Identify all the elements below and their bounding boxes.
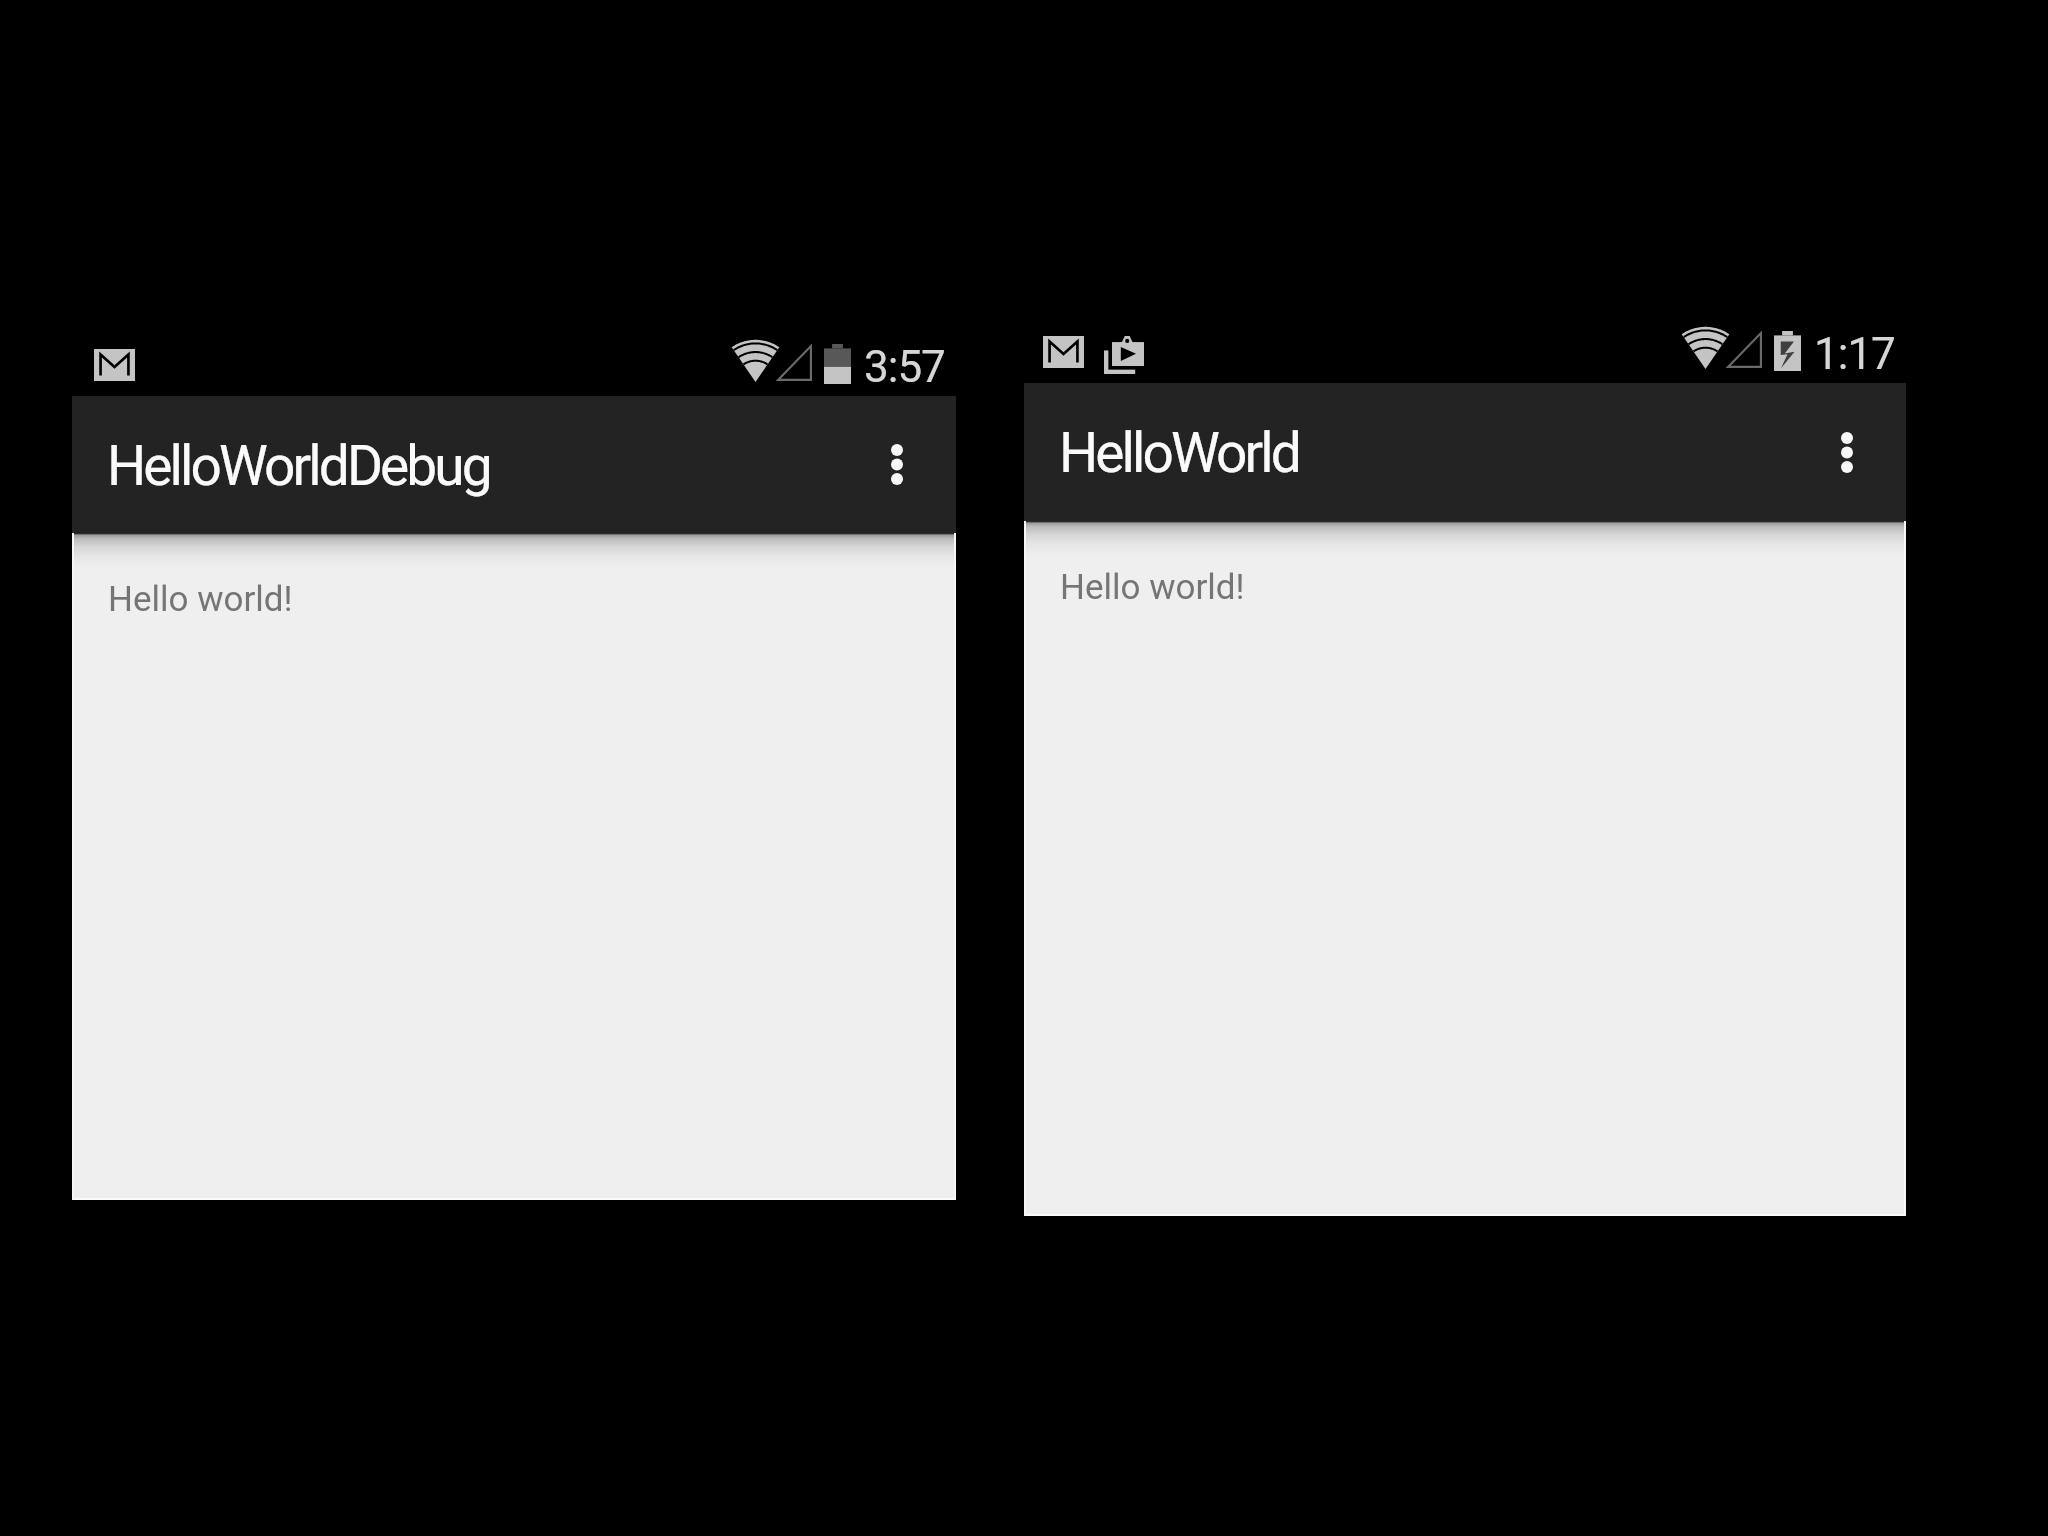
staticText: HelloWorldDebug	[107, 434, 490, 498]
button[interactable]: More options	[1811, 404, 1906, 501]
button[interactable]: More options	[861, 416, 956, 513]
staticText: HelloWorld	[1059, 421, 1299, 485]
staticText: 3:57	[864, 341, 945, 393]
staticText: Hello world!	[1060, 567, 1245, 608]
staticText: 1:17	[1814, 328, 1895, 380]
staticText: Hello world!	[108, 579, 293, 620]
